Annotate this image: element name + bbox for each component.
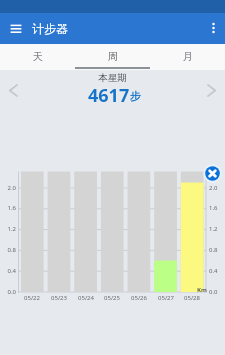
button[interactable]: More options — [205, 20, 222, 37]
staticText: 2.0 — [209, 184, 224, 192]
staticText: 1.2 — [1, 225, 16, 233]
staticText: 0.8 — [1, 246, 16, 254]
staticText: 天 — [33, 50, 43, 63]
button[interactable]: 周 — [75, 44, 150, 70]
staticText: 周 — [108, 50, 118, 63]
staticText: 1.6 — [1, 204, 16, 212]
button[interactable]: 天 — [0, 44, 75, 70]
staticText: 05/26 — [125, 294, 153, 302]
button[interactable]: Menu — [6, 19, 26, 39]
staticText: 月 — [183, 50, 193, 63]
staticText: 计步器 — [32, 21, 68, 36]
staticText: 步 — [130, 89, 141, 103]
staticText: 05/23 — [45, 294, 73, 302]
staticText: 0.4 — [209, 267, 224, 275]
staticText: 0.0 — [209, 288, 224, 296]
staticText: 1.6 — [209, 204, 224, 212]
staticText: 4617 — [88, 83, 130, 108]
staticText: 05/27 — [152, 294, 180, 302]
staticText: 0.8 — [209, 246, 224, 254]
staticText: 1.2 — [209, 225, 224, 233]
button[interactable]: 月 — [150, 44, 225, 70]
staticText: 2.0 — [1, 184, 16, 192]
staticText: 0.4 — [1, 267, 16, 275]
staticText: 05/22 — [18, 294, 46, 302]
staticText: Km — [197, 286, 207, 294]
staticText: 05/28 — [178, 294, 206, 302]
button[interactable]: Previous — [4, 81, 23, 100]
button[interactable]: Close — [203, 164, 222, 183]
staticText: 0.0 — [1, 288, 16, 296]
button[interactable]: Next — [202, 81, 221, 100]
staticText: 本星期 — [0, 72, 225, 84]
staticText: 05/25 — [98, 294, 126, 302]
staticText: 05/24 — [72, 294, 100, 302]
